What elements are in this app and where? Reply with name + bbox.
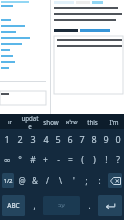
button[interactable]: ABC [2, 195, 25, 216]
button[interactable]: . [82, 191, 96, 220]
staticText: ( [81, 154, 84, 166]
button[interactable]: , [27, 191, 41, 220]
staticText: - [57, 154, 60, 166]
button[interactable]: 5 [52, 129, 64, 149]
button[interactable]: שלא [61, 114, 82, 129]
staticText: ? [116, 154, 120, 166]
button[interactable]: 1 [0, 129, 13, 149]
staticText: ° [18, 154, 22, 166]
button[interactable]: I'm [103, 114, 124, 129]
button[interactable]: ∞ [0, 149, 13, 170]
staticText: I'm [109, 118, 119, 126]
staticText: update [20, 114, 40, 129]
button[interactable]: show [40, 114, 61, 129]
button[interactable]: / [41, 170, 54, 191]
button[interactable]: : [93, 170, 106, 191]
staticText: 8 [91, 133, 97, 145]
button[interactable]: 7 [76, 129, 88, 149]
staticText: 7 [79, 133, 85, 145]
staticText: 1 [4, 133, 10, 145]
staticText: ; [85, 175, 88, 186]
button[interactable]: \ [54, 170, 67, 191]
button[interactable]: 3 [26, 129, 39, 149]
button[interactable]: # [26, 149, 39, 170]
button[interactable]: Space [43, 196, 80, 215]
staticText: 3 [30, 133, 36, 145]
button[interactable]: this [82, 114, 103, 129]
staticText: + [43, 154, 48, 166]
button[interactable]: Backspace [108, 173, 122, 188]
button[interactable]: ' [67, 170, 80, 191]
staticText: עב [58, 202, 65, 209]
staticText: # [30, 154, 36, 166]
staticText: 4 [43, 133, 49, 145]
button[interactable]: - [52, 149, 64, 170]
staticText: & [32, 175, 38, 186]
button[interactable]: ? [112, 149, 124, 170]
button[interactable]: 8 [88, 129, 100, 149]
button[interactable]: 6 [64, 129, 76, 149]
staticText: ABC [7, 201, 20, 210]
button[interactable]: 0 [112, 129, 124, 149]
staticText: ' [73, 175, 75, 186]
staticText: = [68, 154, 73, 166]
staticText: ! [105, 154, 108, 166]
staticText: . [88, 200, 91, 211]
button[interactable]: ! [100, 149, 112, 170]
button[interactable]: ° [13, 149, 26, 170]
button[interactable]: ) [88, 149, 100, 170]
button[interactable]: 4 [39, 129, 52, 149]
staticText: זו [8, 118, 12, 125]
staticText: , [33, 200, 36, 211]
staticText: ∞ [3, 155, 11, 165]
staticText: ) [93, 154, 96, 166]
button[interactable]: Enter [98, 195, 122, 216]
button[interactable]: & [28, 170, 41, 191]
button[interactable]: 2 [13, 129, 26, 149]
staticText: / [46, 175, 49, 186]
staticText: 5 [55, 133, 61, 145]
button[interactable]: Symbols page 1 of 2 [2, 173, 14, 188]
button[interactable]: זו [0, 114, 20, 129]
button[interactable]: @ [16, 170, 28, 191]
button[interactable]: update [20, 114, 40, 129]
button[interactable]: ( [76, 149, 88, 170]
staticText: show [43, 118, 59, 126]
staticText: 9 [103, 133, 109, 145]
staticText: שלא [65, 118, 78, 125]
staticText: 6 [67, 133, 73, 145]
staticText: 1/2 [3, 177, 13, 185]
staticText: 2 [17, 133, 23, 145]
staticText: \ [59, 175, 62, 186]
staticText: @ [18, 175, 26, 186]
staticText: : [98, 175, 101, 186]
button[interactable]: ; [80, 170, 93, 191]
button[interactable]: 9 [100, 129, 112, 149]
button[interactable]: + [39, 149, 52, 170]
button[interactable]: = [64, 149, 76, 170]
staticText: this [87, 118, 98, 126]
staticText: 0 [115, 133, 121, 145]
